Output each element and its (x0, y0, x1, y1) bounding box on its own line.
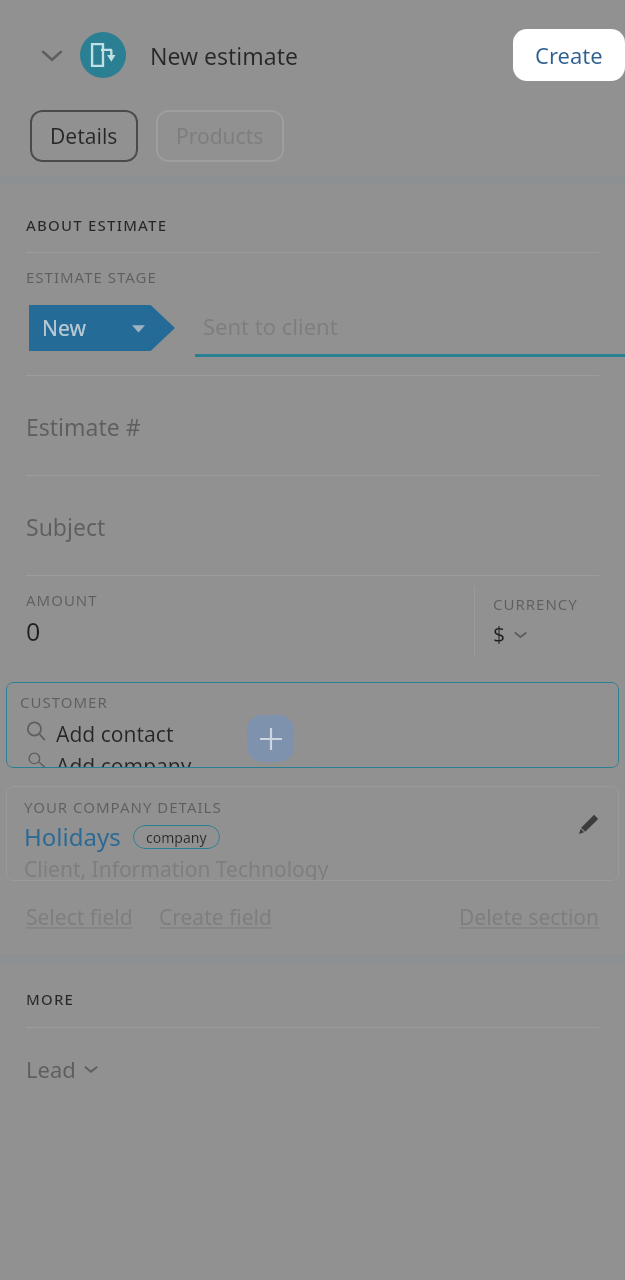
staticText: Create field (159, 903, 272, 932)
button[interactable]: Collapse (30, 33, 74, 77)
staticText: MORE (26, 989, 75, 1009)
staticText: ESTIMATE STAGE (26, 267, 157, 287)
staticText: 0 (26, 614, 41, 648)
staticText: Client, Information Technology (24, 855, 329, 881)
button[interactable]: Add (247, 715, 294, 762)
button[interactable]: Create (513, 29, 625, 81)
staticText: New (42, 314, 86, 343)
button[interactable]: Products (156, 110, 284, 162)
button[interactable]: Select field (26, 903, 133, 932)
staticText: Lead (26, 1054, 76, 1084)
button[interactable]: Estimate # (0, 376, 625, 476)
button[interactable]: $ (493, 620, 527, 649)
staticText: Products (176, 122, 264, 151)
staticText: Select field (26, 903, 133, 932)
staticText: Sent to client (203, 311, 338, 341)
staticText: Details (50, 122, 118, 151)
staticText: ABOUT ESTIMATE (26, 215, 168, 235)
staticText: New estimate (150, 40, 298, 71)
staticText: Delete section (459, 903, 599, 932)
staticText: Add contact (56, 720, 174, 742)
staticText: YOUR COMPANY DETAILS (24, 797, 222, 817)
button[interactable]: Details (30, 110, 138, 162)
button[interactable]: Lead (26, 1054, 98, 1084)
staticText: CURRENCY (493, 594, 578, 614)
staticText: Add company (56, 752, 192, 768)
button[interactable]: Delete section (459, 903, 599, 932)
button[interactable]: Create field (159, 903, 272, 932)
staticText: $ (493, 620, 506, 649)
staticText: Create (535, 40, 603, 70)
staticText: CUSTOMER (20, 692, 108, 712)
button[interactable]: Subject (0, 476, 625, 576)
staticText: AMOUNT (26, 590, 98, 610)
staticText: company (146, 828, 207, 847)
staticText: Subject (26, 511, 106, 542)
button[interactable]: Add contact (20, 720, 619, 742)
button[interactable]: New (25, 299, 175, 357)
button[interactable]: Sent to client (195, 299, 625, 357)
button[interactable]: Holidays (24, 820, 121, 853)
button[interactable]: Add company (20, 752, 619, 768)
staticText: Estimate # (26, 411, 141, 442)
button[interactable]: Edit (571, 808, 605, 842)
